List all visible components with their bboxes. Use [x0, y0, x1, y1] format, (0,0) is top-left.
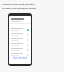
staticText: Connect a personal hotspot: [2, 2, 38, 5]
staticText: to keep your business online: [2, 6, 38, 9]
button[interactable]: [11, 37, 29, 42]
button[interactable]: Get started: [9, 56, 31, 60]
button[interactable]: [11, 42, 29, 47]
button[interactable]: [11, 52, 29, 57]
button[interactable]: [11, 47, 29, 52]
button[interactable]: [11, 32, 29, 37]
staticText: Get started: [13, 56, 27, 60]
button[interactable]: [11, 27, 29, 32]
